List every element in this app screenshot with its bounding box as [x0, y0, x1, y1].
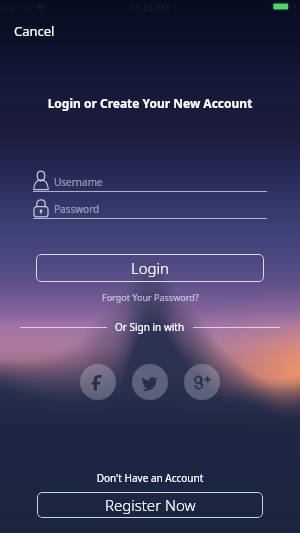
staticText: 11:22 PM: [130, 1, 170, 13]
staticText: Login or Create Your New Account: [0, 95, 300, 111]
button[interactable]: Twitter: [132, 364, 168, 400]
button[interactable]: Cancel: [12, 20, 57, 42]
staticText: Register Now: [105, 495, 196, 515]
staticText: Login: [131, 258, 169, 278]
button[interactable]: Register Now: [37, 492, 263, 518]
button[interactable]: Login: [36, 254, 264, 282]
staticText: Username: [54, 175, 103, 189]
button[interactable]: Forgot Your Password?: [102, 291, 199, 303]
staticText: Password: [54, 202, 100, 216]
button[interactable]: Username: [33, 170, 267, 192]
button[interactable]: Facebook: [80, 364, 116, 400]
staticText: Or Sign in with: [115, 320, 185, 334]
button[interactable]: Password: [33, 197, 267, 219]
staticText: Forgot Your Password?: [102, 291, 199, 303]
button[interactable]: Google Plus: [184, 364, 220, 400]
staticText: Cancel: [14, 22, 55, 40]
staticText: Don't Have an Account: [0, 471, 300, 485]
staticText: Carrier: [3, 1, 33, 13]
